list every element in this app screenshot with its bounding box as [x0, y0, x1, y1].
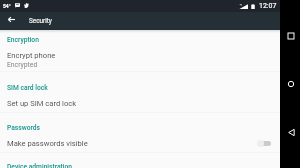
- button[interactable]: Encrypt phone: [0, 49, 280, 71]
- staticText: Encrypted: [7, 61, 38, 69]
- button[interactable]: Recents: [286, 31, 296, 41]
- staticText: SIM card lock: [7, 84, 48, 92]
- button[interactable]: Back: [286, 127, 296, 137]
- staticText: 54°: [3, 3, 11, 9]
- button[interactable]: Set up SIM card lock: [0, 96, 280, 111]
- staticText: 12:07: [259, 2, 277, 10]
- staticText: Security: [29, 17, 52, 25]
- staticText: Passwords: [7, 124, 41, 132]
- staticText: Encrypt phone: [7, 51, 56, 60]
- button[interactable]: Back: [0, 12, 23, 27]
- button[interactable]: Home: [286, 79, 296, 89]
- staticText: Set up SIM card lock: [7, 99, 77, 108]
- staticText: Device administration: [7, 163, 73, 168]
- button[interactable]: Make passwords visible: [0, 135, 280, 151]
- staticText: Make passwords visible: [7, 139, 88, 148]
- staticText: Encryption: [7, 36, 39, 44]
